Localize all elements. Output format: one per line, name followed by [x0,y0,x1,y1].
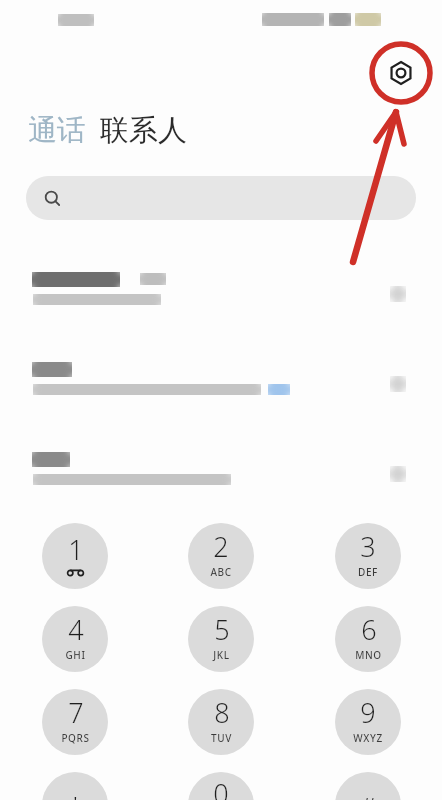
button[interactable]: 0 [188,772,254,800]
button[interactable]: 1 [42,523,108,589]
other: More [390,376,406,392]
staticText: PQRS [61,731,90,745]
staticText: 9 [360,694,376,731]
button[interactable]: # [335,772,401,800]
staticText: WXYZ [353,731,383,745]
button[interactable]: 5 [188,606,254,672]
staticText: GHI [65,648,86,662]
button[interactable]: Settings [379,51,423,95]
staticText: 通话 [28,112,86,149]
button[interactable]: More [0,268,442,338]
button[interactable]: 8 [188,689,254,755]
staticText: 7 [68,694,84,731]
other: More [390,466,406,482]
button[interactable]: 6 [335,606,401,672]
staticText: JKL [213,648,230,662]
staticText: 联系人 [100,112,187,149]
staticText: # [360,788,377,800]
button[interactable]: 7 [42,689,108,755]
staticText: 1 [68,531,84,568]
staticText: 4 [68,611,84,648]
button[interactable] [26,176,416,220]
staticText: MNO [355,648,382,662]
staticText: TUV [211,731,232,745]
button[interactable]: 2 [188,523,254,589]
button[interactable]: 3 [335,523,401,589]
staticText: 6 [361,611,377,648]
staticText: 3 [360,528,376,565]
staticText: 5 [214,611,230,648]
button[interactable]: More [0,358,442,428]
button[interactable]: 联系人 [100,112,187,149]
button[interactable]: 4 [42,606,108,672]
button[interactable]: 9 [335,689,401,755]
other: More [390,286,406,302]
staticText: DEF [358,565,378,579]
staticText: 2 [213,528,229,565]
staticText: 0 [213,775,229,800]
staticText: * [68,788,83,800]
staticText: 8 [214,694,230,731]
staticText: ABC [210,565,232,579]
button[interactable]: More [0,448,442,518]
button[interactable]: 通话 [28,112,86,149]
button[interactable]: * [42,772,108,800]
